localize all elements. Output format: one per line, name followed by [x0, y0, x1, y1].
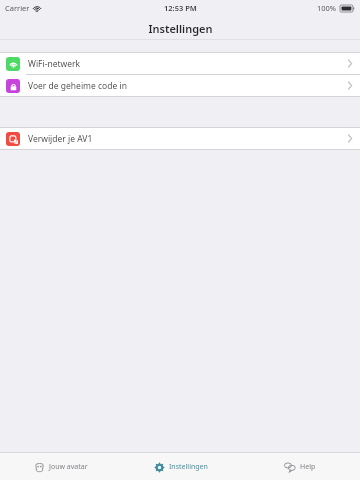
staticText: Instellingen	[148, 21, 213, 36]
staticText: 12:53 PM	[164, 3, 197, 13]
button[interactable]: Help	[240, 461, 360, 473]
button[interactable]: WiFi-netwerk	[0, 53, 360, 74]
staticText: Voer de geheime code in	[28, 80, 127, 92]
button[interactable]: Voer de geheime code in	[0, 75, 360, 96]
staticText: Help	[300, 462, 316, 472]
staticText: 100%	[317, 3, 337, 13]
staticText: Instellingen	[169, 462, 208, 472]
staticText: WiFi-netwerk	[28, 58, 81, 70]
staticText: Verwijder je AV1	[28, 133, 93, 145]
staticText: Jouw avatar	[49, 462, 88, 472]
button[interactable]: Instellingen	[120, 461, 240, 473]
button[interactable]: Verwijder je AV1	[0, 128, 360, 149]
button[interactable]: Jouw avatar	[0, 461, 120, 473]
staticText: Carrier	[5, 3, 30, 13]
